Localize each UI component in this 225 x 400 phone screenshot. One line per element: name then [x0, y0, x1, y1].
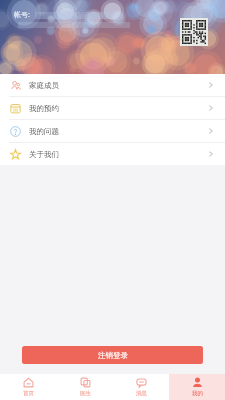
- staticText: 注销登录: [98, 351, 128, 360]
- staticText: 帐号:: [14, 10, 30, 20]
- button[interactable]: 医生: [57, 374, 113, 400]
- staticText: 关于我们: [29, 150, 59, 159]
- button[interactable]: 我的问题: [0, 120, 225, 142]
- button[interactable]: 首页: [0, 374, 57, 400]
- staticText: 首页: [23, 390, 34, 397]
- button[interactable]: 注销登录: [22, 346, 203, 364]
- staticText: 医生: [80, 390, 91, 397]
- staticText: 消息: [136, 390, 147, 397]
- button[interactable]: 二维码: [180, 18, 208, 46]
- button[interactable]: 消息: [113, 374, 169, 400]
- button[interactable]: 我的: [169, 374, 225, 400]
- button[interactable]: 家庭成员: [0, 74, 225, 96]
- staticText: 家庭成员: [29, 81, 59, 90]
- staticText: 我的问题: [29, 127, 59, 136]
- staticText: 我的预约: [29, 104, 59, 113]
- button[interactable]: 关于我们: [0, 143, 225, 165]
- staticText: 我的: [192, 390, 203, 397]
- button[interactable]: 我的预约: [0, 97, 225, 119]
